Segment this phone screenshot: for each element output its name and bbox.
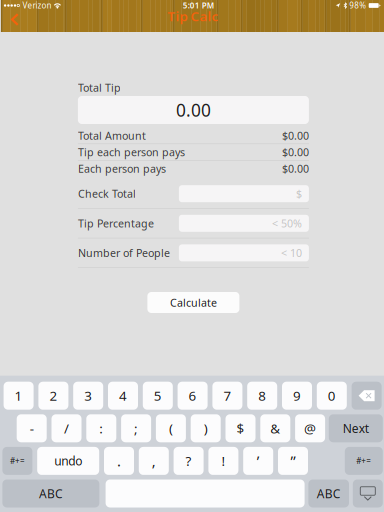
staticText: $0.00 <box>282 128 309 143</box>
button[interactable]: 6 <box>178 382 208 410</box>
button[interactable]: ABC <box>308 479 349 507</box>
staticText: : <box>99 419 103 437</box>
staticText: / <box>64 419 69 437</box>
button[interactable]: ; <box>121 414 151 442</box>
staticText: - <box>30 419 34 437</box>
button[interactable]: $ <box>225 414 255 442</box>
staticText: ABC <box>39 485 63 501</box>
staticText: , <box>152 451 156 471</box>
staticText: undo <box>54 453 82 469</box>
staticText: 1 <box>15 387 23 404</box>
button[interactable]: Hide keyboard <box>353 479 383 507</box>
staticText: $ <box>296 187 302 201</box>
button[interactable]: ? <box>174 447 204 475</box>
staticText: Check Total <box>78 187 136 201</box>
staticText: $0.00 <box>282 162 309 176</box>
staticText: 5 <box>154 387 162 404</box>
staticText: < 50% <box>272 216 302 230</box>
staticText: 7 <box>223 387 231 404</box>
staticText: #+= <box>356 456 371 466</box>
staticText: Number of People <box>78 246 170 260</box>
staticText: ABC <box>317 485 341 501</box>
staticText: Total Tip <box>78 80 121 95</box>
button[interactable]: ABC <box>2 479 99 507</box>
button[interactable]: & <box>260 414 290 442</box>
button[interactable]: 1 <box>4 382 34 410</box>
button[interactable]: 2 <box>38 382 68 410</box>
staticText: Next <box>343 420 369 436</box>
button[interactable]: ( <box>156 414 186 442</box>
button[interactable]: 4 <box>108 382 138 410</box>
staticText: 0 <box>328 387 336 404</box>
button[interactable]: 3 <box>73 382 103 410</box>
staticText: ! <box>221 452 225 470</box>
staticText: 9 <box>293 387 301 404</box>
staticText: ( <box>169 419 173 437</box>
staticText: $ <box>236 419 244 437</box>
staticText: ; <box>134 419 138 437</box>
button[interactable]: ! <box>208 447 238 475</box>
staticText: Tip Percentage <box>78 216 154 230</box>
button[interactable]: 0 <box>317 382 347 410</box>
button[interactable]: / <box>51 414 81 442</box>
staticText: ’ <box>257 451 260 471</box>
button[interactable]: , <box>139 447 169 475</box>
button[interactable]: @ <box>295 414 325 442</box>
button[interactable]: 5 <box>143 382 173 410</box>
staticText: ) <box>204 419 208 437</box>
staticText: Calculate <box>170 295 217 310</box>
button[interactable]: - <box>17 414 47 442</box>
staticText: 8 <box>258 387 266 404</box>
staticText: Tip each person pays <box>78 145 185 159</box>
button[interactable]: Next <box>329 414 383 442</box>
staticText: 98% <box>349 0 366 11</box>
staticText: ” <box>290 451 295 471</box>
staticText: 0.00 <box>176 98 211 121</box>
button[interactable]: ’ <box>243 447 273 475</box>
staticText: 5:01 PM <box>183 0 214 11</box>
staticText: Each person pays <box>78 162 166 176</box>
button[interactable]: . <box>104 447 134 475</box>
staticText: @ <box>304 419 316 437</box>
button[interactable]: undo <box>37 447 99 475</box>
staticText: < 10 <box>281 246 302 260</box>
button[interactable]: 7 <box>212 382 242 410</box>
staticText: #+= <box>10 456 25 466</box>
staticText: . <box>117 451 121 471</box>
button[interactable]: 8 <box>247 382 277 410</box>
button[interactable]: ) <box>191 414 221 442</box>
staticText: 2 <box>49 387 57 404</box>
button[interactable]: Delete <box>352 382 382 410</box>
staticText: Verizon <box>22 0 51 11</box>
button[interactable]: Calculate <box>147 292 239 313</box>
button[interactable]: #+= <box>345 447 383 475</box>
button[interactable]: Back <box>1 11 29 28</box>
staticText: $0.00 <box>282 145 309 159</box>
staticText: 3 <box>84 387 92 404</box>
button[interactable]: ” <box>278 447 308 475</box>
button[interactable]: #+= <box>2 447 32 475</box>
button[interactable]: 9 <box>282 382 312 410</box>
staticText: 6 <box>189 387 197 404</box>
button[interactable] <box>106 479 305 507</box>
staticText: & <box>270 419 280 437</box>
staticText: Total Amount <box>78 128 146 143</box>
button[interactable]: : <box>86 414 116 442</box>
staticText: 4 <box>119 387 127 404</box>
staticText: ? <box>186 452 192 470</box>
staticText: Tip Calc <box>167 7 218 25</box>
